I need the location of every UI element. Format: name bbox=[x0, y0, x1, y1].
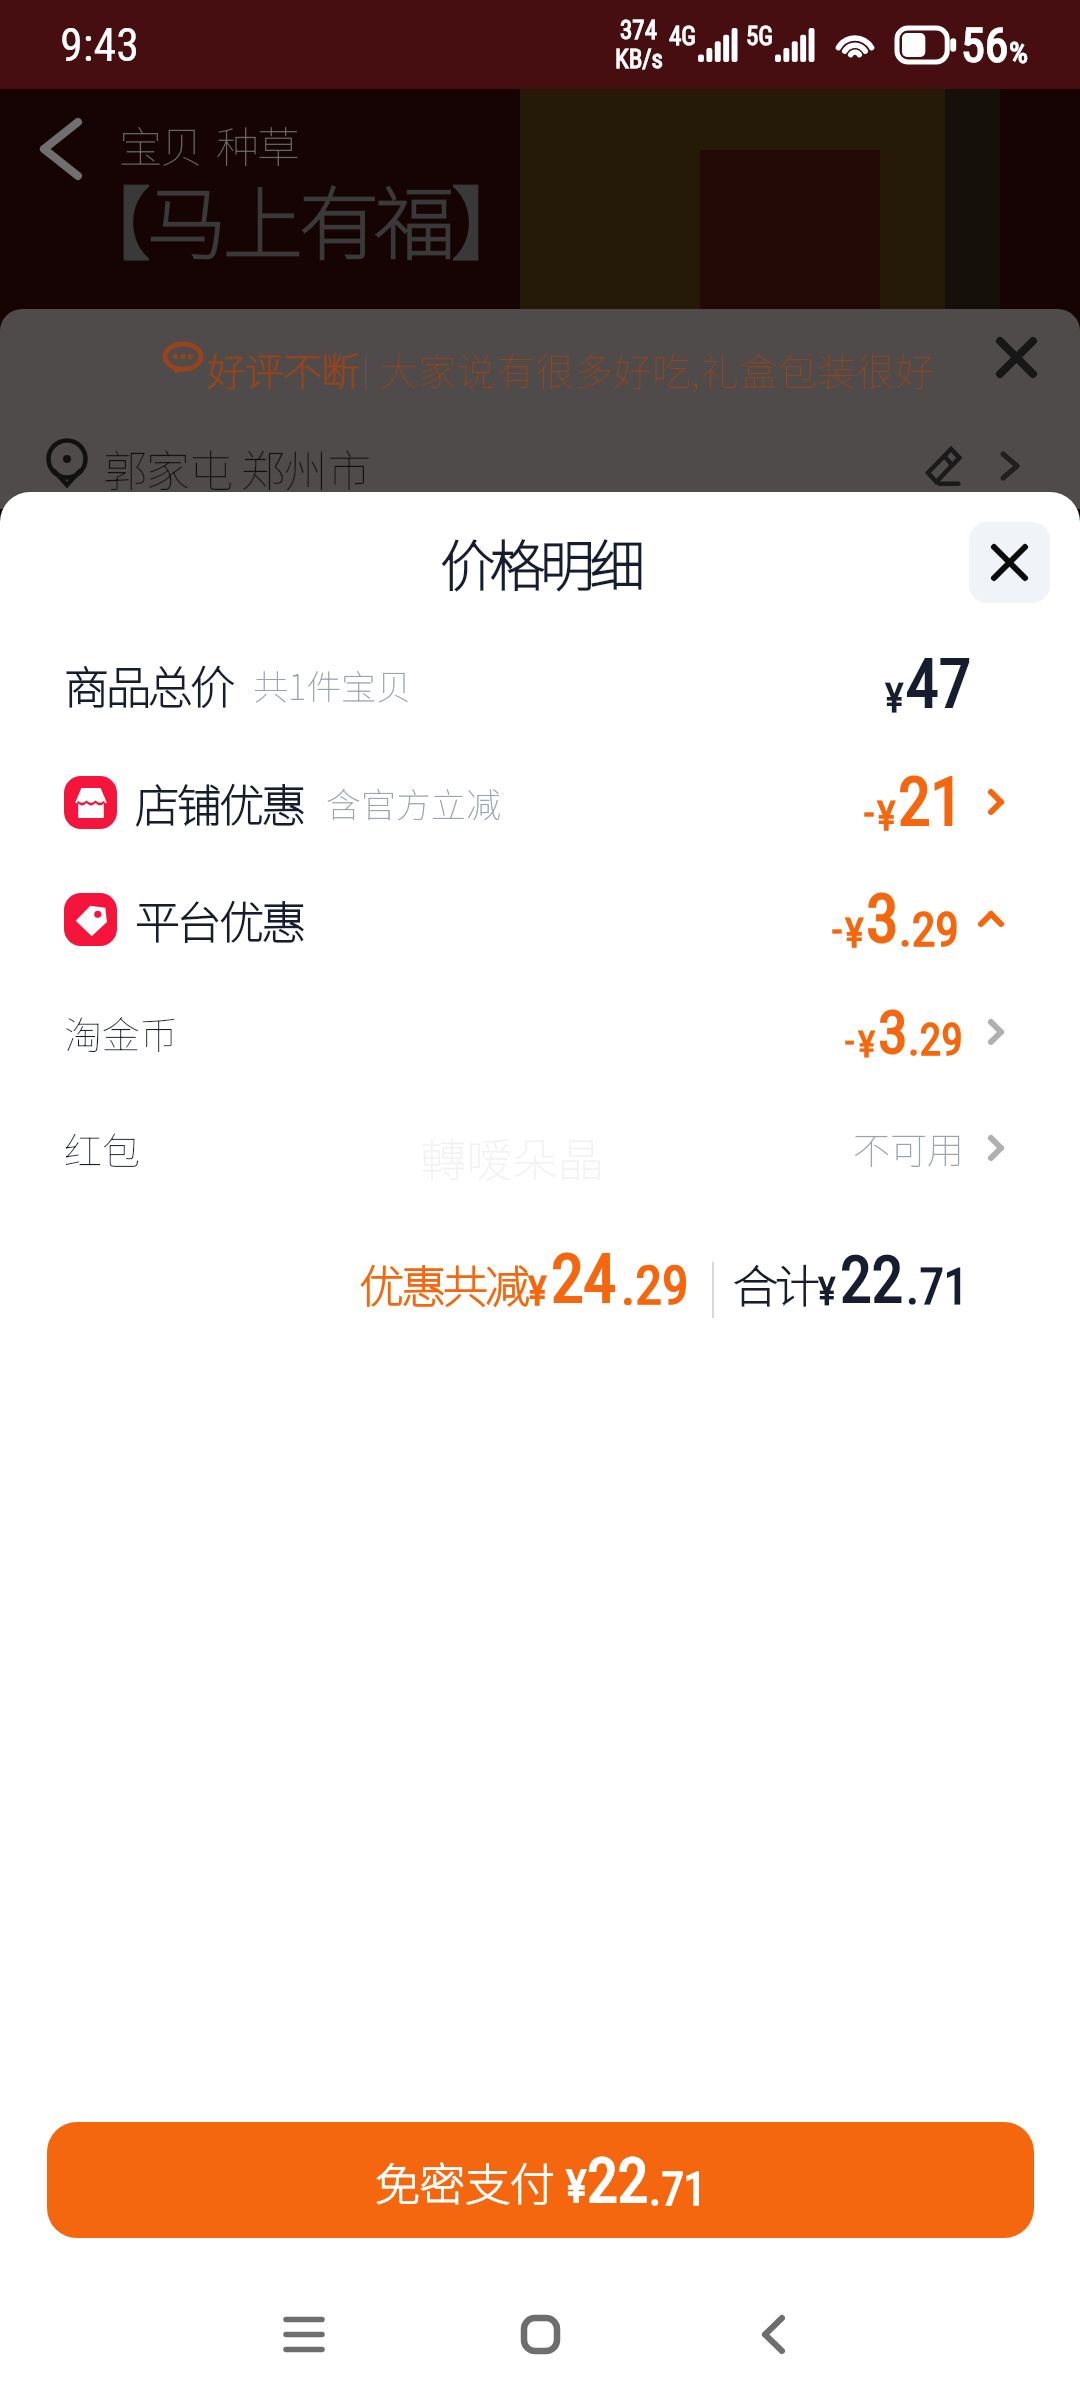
staticText: 优惠共减 bbox=[359, 1251, 528, 1316]
staticText: .71 bbox=[906, 1258, 969, 1317]
staticText: - bbox=[832, 907, 842, 954]
staticText: 平台优惠 bbox=[135, 887, 304, 952]
staticText: 【马上有福】 bbox=[71, 160, 527, 276]
staticText: ¥ bbox=[877, 793, 896, 840]
staticText: .71 bbox=[649, 2162, 707, 2216]
staticText: 淘金币 bbox=[64, 1005, 179, 1060]
button[interactable]: Home bbox=[495, 2289, 585, 2379]
staticText: .29 bbox=[621, 1254, 689, 1317]
staticText: 3 bbox=[878, 997, 908, 1067]
staticText: 免密支付 bbox=[375, 2149, 556, 2214]
staticText: KB/s bbox=[615, 45, 663, 74]
staticText: 374 bbox=[620, 16, 658, 45]
staticText: 郭家屯 郑州市 bbox=[103, 436, 370, 500]
staticText: - bbox=[845, 1020, 855, 1063]
staticText: 商品总价 bbox=[64, 652, 233, 717]
staticText: 轉嗳朵晶 bbox=[420, 1124, 604, 1191]
staticText: 5G bbox=[746, 22, 774, 51]
staticText: 22 bbox=[840, 1243, 904, 1318]
button[interactable]: 红包 bbox=[64, 1098, 1004, 1198]
staticText: 合计 bbox=[733, 1251, 818, 1316]
staticText: ¥ bbox=[845, 910, 864, 957]
button[interactable]: Recent apps bbox=[259, 2289, 349, 2379]
button[interactable]: Close bbox=[969, 522, 1050, 603]
staticText: ¥ bbox=[885, 675, 904, 722]
staticText: 共1件宝贝 bbox=[253, 659, 412, 710]
staticText: 9:43 bbox=[60, 18, 139, 72]
staticText: 好评不断 bbox=[207, 341, 360, 397]
button[interactable]: 平台优惠 bbox=[64, 869, 1004, 969]
button[interactable]: 免密支付 bbox=[47, 2122, 1034, 2238]
button[interactable]: 店铺优惠 bbox=[64, 752, 1004, 852]
staticText: 红包 bbox=[64, 1121, 141, 1176]
staticText: 22 bbox=[587, 2144, 649, 2217]
staticText: 4G bbox=[669, 22, 697, 51]
staticText: ¥ bbox=[858, 1023, 876, 1066]
staticText: | bbox=[362, 345, 370, 391]
staticText: 店铺优惠 bbox=[135, 770, 304, 835]
button[interactable]: 商品总价 bbox=[64, 634, 1004, 734]
staticText: 大家说有很多好吃,礼盒包装很好 bbox=[379, 341, 935, 397]
staticText: 不可用 bbox=[853, 1121, 964, 1175]
staticText: ¥ bbox=[528, 1268, 547, 1315]
staticText: .29 bbox=[899, 901, 960, 957]
staticText: - bbox=[864, 790, 874, 837]
button[interactable]: 淘金币 bbox=[64, 982, 1004, 1082]
staticText: 价格明细 bbox=[440, 522, 641, 602]
button[interactable]: Back bbox=[728, 2289, 818, 2379]
staticText: 21 bbox=[898, 764, 964, 841]
staticText: % bbox=[1009, 35, 1028, 70]
staticText: 宝贝 种草 bbox=[119, 113, 298, 175]
staticText: 3 bbox=[866, 881, 899, 958]
staticText: 24 bbox=[551, 1241, 617, 1318]
staticText: 含官方立减 bbox=[326, 777, 502, 828]
staticText: ¥ bbox=[818, 1270, 836, 1315]
button[interactable]: Dismiss banner bbox=[980, 321, 1052, 393]
staticText: ¥ bbox=[566, 2161, 587, 2213]
staticText: 56 bbox=[961, 17, 1009, 73]
staticText: 47 bbox=[906, 646, 972, 723]
staticText: .29 bbox=[908, 1014, 964, 1066]
